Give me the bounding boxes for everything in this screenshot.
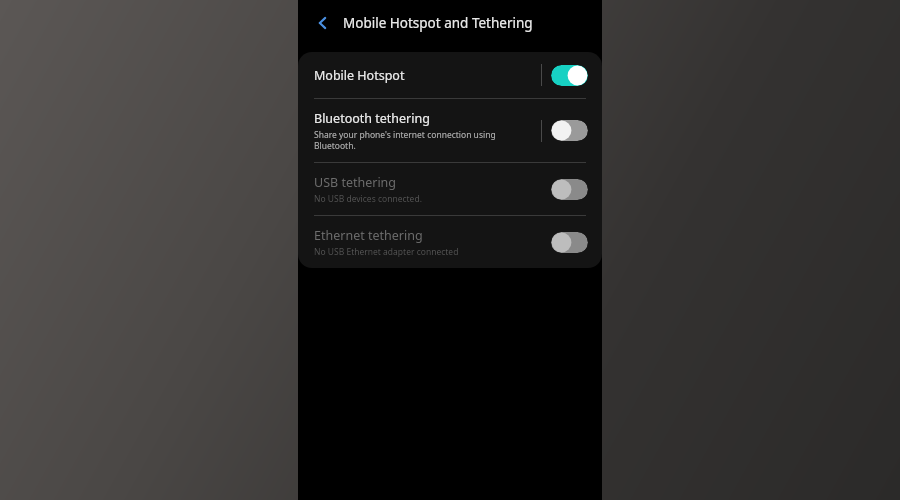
button[interactable]: Toggle Ethernet tethering [551, 232, 588, 253]
staticText: Bluetooth tethering [314, 110, 430, 127]
staticText: USB tethering [314, 174, 397, 191]
staticText: No USB Ethernet adapter connected [314, 246, 459, 258]
staticText: Mobile Hotspot [314, 67, 405, 84]
staticText: Ethernet tethering [314, 227, 423, 244]
staticText: No USB devices connected. [314, 193, 422, 205]
button[interactable]: Ethernet tethering [298, 216, 602, 268]
button[interactable]: Toggle USB tethering [551, 179, 588, 200]
button[interactable]: USB tethering [298, 163, 602, 215]
staticText: Mobile Hotspot and Tethering [343, 14, 533, 32]
button[interactable]: Toggle Mobile Hotspot [551, 65, 588, 86]
button[interactable]: Toggle Bluetooth tethering [551, 120, 588, 141]
button[interactable]: Back [306, 6, 340, 40]
button[interactable]: Mobile Hotspot [298, 52, 602, 98]
staticText: Share your phone's internet connection u… [314, 129, 496, 151]
button[interactable]: Bluetooth tethering [298, 99, 602, 162]
